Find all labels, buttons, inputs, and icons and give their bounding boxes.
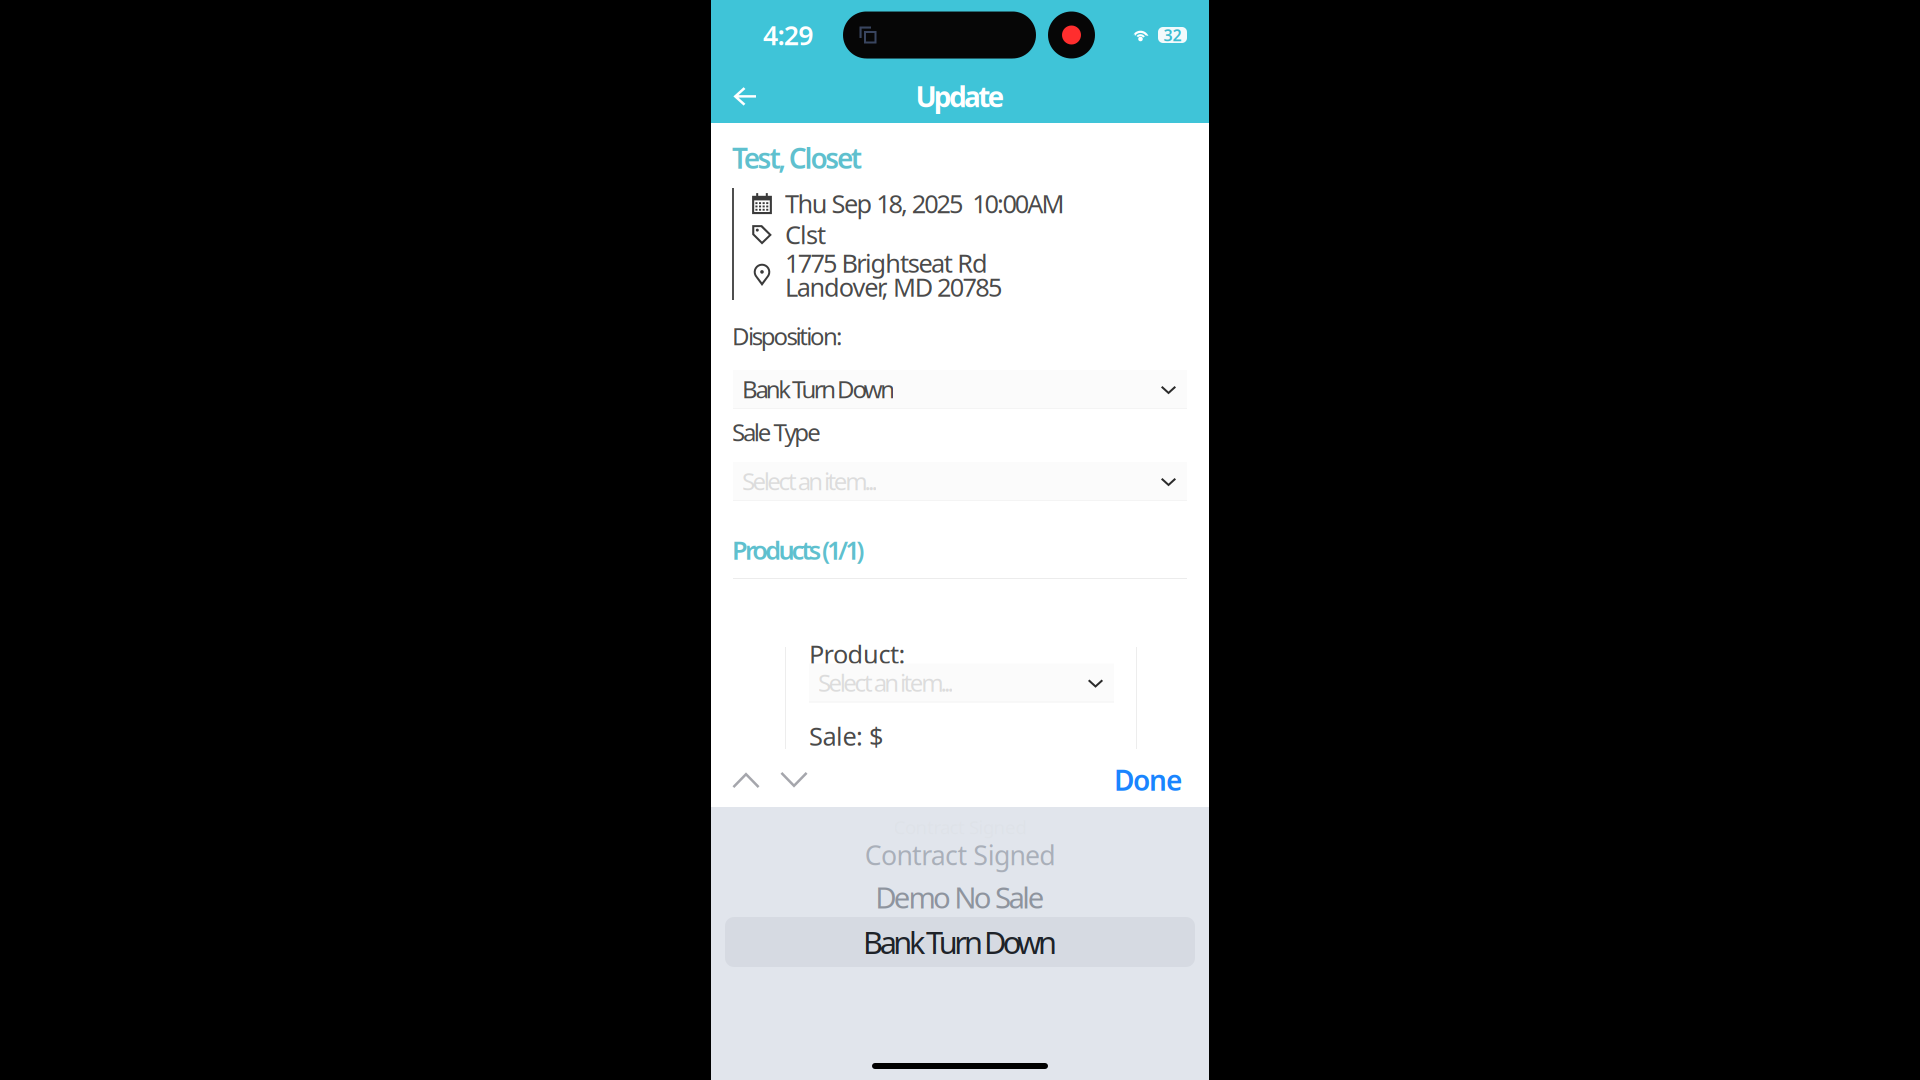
staticText: Bank Turn Down: [863, 922, 1057, 962]
staticText: Contract Signed: [865, 837, 1055, 873]
staticText: 4:29: [763, 17, 813, 53]
button[interactable]: Select an item...: [809, 663, 1114, 702]
staticText: Disposition:: [732, 320, 842, 352]
staticText: Clst: [785, 218, 826, 251]
staticText: Bank Turn Down: [742, 373, 895, 405]
staticText: 32: [1163, 24, 1181, 46]
staticText: Select an item...: [742, 465, 877, 497]
staticText: Demo No Sale: [875, 877, 1045, 916]
staticText: Sale: $: [809, 719, 883, 753]
button[interactable]: Contract Signed: [711, 842, 1209, 868]
button[interactable]: Previous field: [724, 753, 768, 807]
staticText: Done: [1114, 761, 1182, 799]
staticText: Select an item...: [818, 667, 953, 698]
button[interactable]: Done: [1114, 753, 1182, 807]
staticText: Product:: [809, 637, 905, 671]
button[interactable]: Back: [711, 74, 778, 118]
staticText: Thu Sep 18, 2025 10:00AM: [785, 187, 1065, 220]
button[interactable]: Bank Turn Down: [733, 370, 1187, 409]
staticText: Landover, MD 20785: [785, 270, 1002, 304]
button[interactable]: Demo No Sale: [711, 883, 1209, 911]
staticText: Test, Closet: [732, 139, 862, 177]
staticText: Update: [915, 78, 1004, 115]
staticText: Products (1/1): [732, 533, 864, 567]
staticText: Sale Type: [732, 416, 821, 448]
button[interactable]: Next field: [772, 753, 816, 807]
staticText: 1775 Brightseat Rd: [785, 246, 988, 280]
button[interactable]: Select an item...: [733, 462, 1187, 501]
button[interactable]: Bank Turn Down: [711, 917, 1209, 967]
